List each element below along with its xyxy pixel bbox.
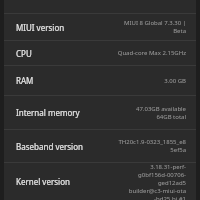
staticText: MIUI 8 Global 7.3.30 | Beta (124, 19, 186, 35)
staticText: Quad-core Max 2.15GHz (117, 49, 186, 57)
button[interactable]: MIUI version (4, 14, 196, 40)
staticText: RAM (16, 75, 160, 86)
staticText: 3.00 GB (164, 77, 186, 85)
staticText: TH20c1.9-0323_1855_e8 5ef5a (118, 138, 186, 154)
button[interactable]: Kernel version (4, 163, 196, 200)
button[interactable]: CPU (4, 41, 196, 65)
staticText: 3.18.31-perf- g0bf156d-00706- ged12ad5 b… (128, 163, 186, 200)
staticText: CPU (16, 48, 113, 59)
button[interactable]: Baseband version (4, 130, 196, 162)
button[interactable]: RAM (4, 66, 196, 95)
staticText: Baseband version (16, 141, 114, 152)
staticText: 47.03GB available 64GB total (135, 105, 186, 121)
staticText: Kernel version (16, 176, 124, 187)
staticText: Internal memory (16, 107, 131, 118)
staticText: MIUI version (16, 22, 120, 33)
button[interactable]: Internal memory (4, 96, 196, 129)
